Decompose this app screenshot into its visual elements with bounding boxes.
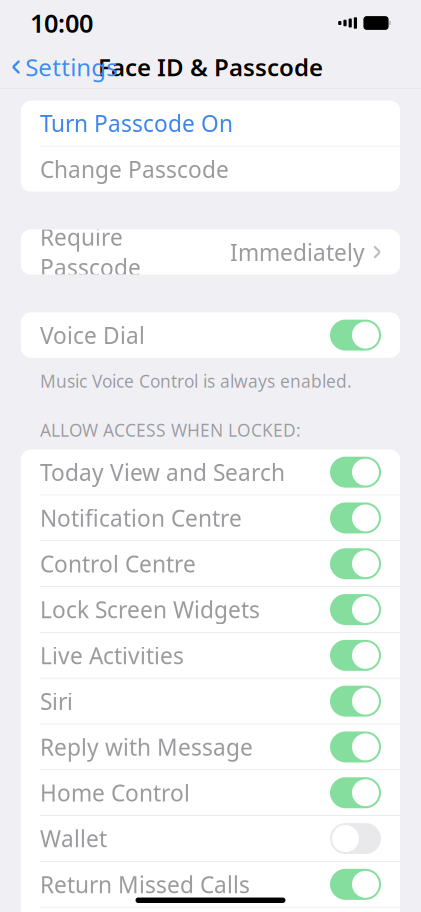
- button[interactable]: Control Centre: [21, 541, 400, 586]
- button[interactable]: Notification Centre: [21, 495, 400, 540]
- staticText: Turn Passcode On: [40, 108, 233, 138]
- staticText: Music Voice Control is always enabled.: [40, 370, 352, 393]
- staticText: Today View and Search: [40, 457, 285, 487]
- staticText: 10:00: [30, 6, 93, 40]
- staticText: Control Centre: [40, 549, 196, 579]
- staticText: Home Control: [40, 778, 190, 808]
- staticText: Immediately: [230, 237, 365, 267]
- staticText: Siri: [40, 686, 73, 716]
- staticText: Live Activities: [40, 640, 184, 670]
- button[interactable]: Settings: [0, 45, 117, 89]
- button[interactable]: Return Missed Calls: [21, 862, 400, 907]
- staticText: Change Passcode: [40, 154, 229, 184]
- staticText: Notification Centre: [40, 503, 242, 533]
- staticText: Settings: [25, 51, 117, 83]
- staticText: Wallet: [40, 823, 107, 854]
- button[interactable]: Home Control: [21, 770, 400, 815]
- button[interactable]: Turn Passcode On: [21, 101, 400, 146]
- button[interactable]: Lock Screen Widgets: [21, 587, 400, 632]
- staticText: Return Missed Calls: [40, 869, 250, 899]
- staticText: ALLOW ACCESS WHEN LOCKED:: [40, 419, 301, 442]
- button[interactable]: Voice Dial: [21, 313, 400, 358]
- staticText: Voice Dial: [40, 320, 145, 350]
- button[interactable]: Today View and Search: [21, 450, 400, 495]
- button[interactable]: Live Activities: [21, 633, 400, 678]
- button[interactable]: Require Passcode: [21, 230, 400, 275]
- button[interactable]: Siri: [21, 679, 400, 724]
- staticText: Reply with Message: [40, 732, 253, 762]
- staticText: Require Passcode: [40, 222, 141, 282]
- button[interactable]: Wallet: [21, 816, 400, 861]
- button[interactable]: Reply with Message: [21, 724, 400, 769]
- button[interactable]: Change Passcode: [21, 147, 400, 192]
- staticText: Lock Screen Widgets: [40, 594, 260, 625]
- staticText: Face ID & Passcode: [98, 51, 323, 83]
